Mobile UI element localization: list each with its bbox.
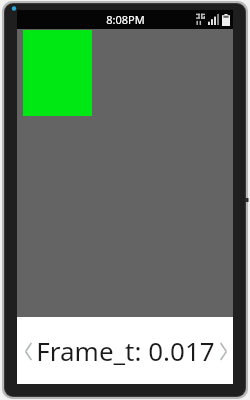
button[interactable]: Next (215, 331, 231, 371)
button[interactable]: Previous (20, 331, 36, 371)
staticText: 8:08PM (106, 12, 145, 27)
staticText: Frame_t: 0.017 (36, 333, 215, 368)
button[interactable]: Previous (17, 317, 233, 384)
